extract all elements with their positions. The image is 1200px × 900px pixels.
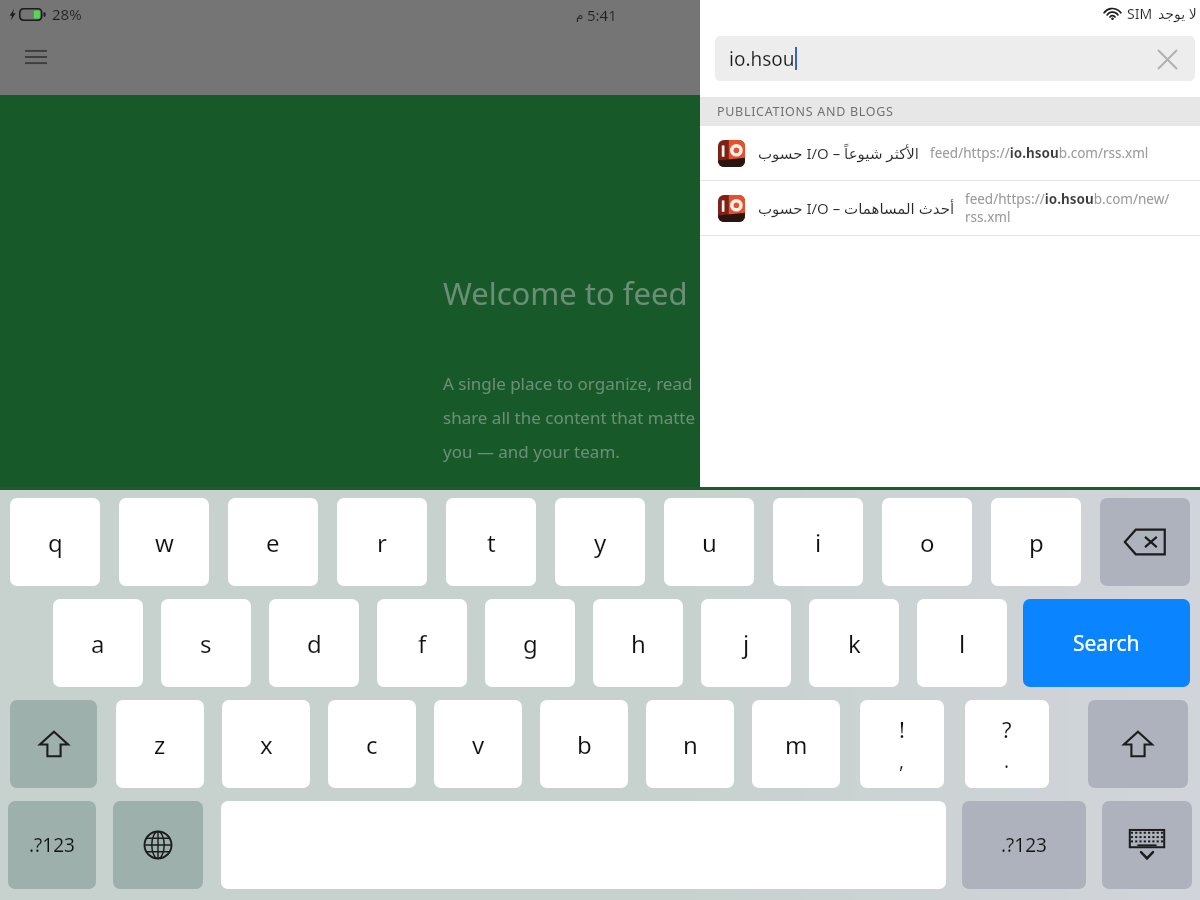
button[interactable]: y [555, 498, 645, 586]
staticText: j [743, 627, 750, 660]
staticText: share all the content that matte [443, 406, 696, 429]
button[interactable]: c [328, 700, 416, 788]
button[interactable]: حسوب I/O – الأكثر شيوعاً [700, 126, 1200, 180]
button[interactable]: i [773, 498, 863, 586]
staticText: A single place to organize, read [443, 372, 693, 395]
button[interactable]: t [446, 498, 536, 586]
button[interactable]: Hide keyboard [1102, 801, 1192, 889]
button[interactable]: Search [1023, 599, 1190, 687]
button[interactable]: p [991, 498, 1081, 586]
button[interactable]: v [434, 700, 522, 788]
button[interactable]: Backspace [1100, 498, 1190, 586]
button[interactable]: e [228, 498, 318, 586]
staticText: SIM [1127, 4, 1153, 23]
button[interactable]: .?123 [962, 801, 1086, 889]
staticText: e [266, 526, 280, 559]
button[interactable]: f [377, 599, 467, 687]
staticText: حسوب I/O – الأكثر شيوعاً [758, 143, 920, 163]
button[interactable]: Shift [1088, 700, 1188, 788]
button[interactable]: m [752, 700, 840, 788]
staticText: p [1029, 526, 1044, 559]
staticText: 28% [52, 4, 82, 24]
button[interactable]: r [337, 498, 427, 586]
staticText: z [154, 728, 166, 761]
button[interactable]: x [222, 700, 310, 788]
staticText: .?123 [29, 832, 75, 858]
button[interactable]: z [116, 700, 204, 788]
staticText: g [523, 627, 538, 660]
button[interactable]: a [53, 599, 143, 687]
staticText: a [91, 627, 105, 660]
staticText: ? [1002, 714, 1012, 744]
staticText: n [683, 728, 698, 761]
staticText: v [472, 728, 485, 761]
staticText: q [48, 526, 63, 559]
staticText: b [577, 728, 592, 761]
staticText: Search [1073, 629, 1140, 658]
button[interactable]: Clear search query [1152, 44, 1182, 74]
button[interactable]: u [664, 498, 754, 586]
staticText: لا يوجد [1158, 4, 1197, 23]
staticText: io.hsou [729, 46, 795, 72]
button[interactable]: ! [860, 700, 944, 788]
button[interactable]: .?123 [8, 801, 96, 889]
staticText: r [377, 526, 387, 559]
staticText: m [785, 728, 808, 761]
staticText: feed/https://io.hsoub.com/new/rss.xml [965, 190, 1200, 226]
button[interactable]: l [917, 599, 1007, 687]
button[interactable]: ? [965, 700, 1049, 788]
button[interactable]: s [161, 599, 251, 687]
staticText: , [899, 748, 905, 774]
staticText: l [959, 627, 966, 660]
staticText: o [920, 526, 935, 559]
button[interactable]: Shift [10, 700, 97, 788]
staticText: .?123 [1001, 832, 1047, 858]
button[interactable]: q [10, 498, 100, 586]
staticText: you — and your team. [443, 440, 620, 463]
button[interactable]: h [593, 599, 683, 687]
staticText: u [702, 526, 717, 559]
staticText: PUBLICATIONS AND BLOGS [717, 103, 894, 120]
staticText: d [307, 627, 322, 660]
staticText: s [200, 627, 212, 660]
staticText: حسوب I/O – أحدث المساهمات [758, 198, 955, 218]
staticText: y [594, 526, 607, 559]
staticText: t [487, 526, 496, 559]
staticText: w [155, 526, 174, 559]
button[interactable]: n [646, 700, 734, 788]
button[interactable]: o [882, 498, 972, 586]
button[interactable]: g [485, 599, 575, 687]
staticText: i [815, 526, 822, 559]
button[interactable]: Change keyboard language [113, 801, 203, 889]
staticText: h [631, 627, 646, 660]
button[interactable]: Open navigation menu [18, 39, 54, 75]
staticText: x [260, 728, 273, 761]
button[interactable]: w [119, 498, 209, 586]
button[interactable]: حسوب I/O – أحدث المساهمات [700, 181, 1200, 235]
button[interactable]: k [809, 599, 899, 687]
staticText: 5:41 [587, 5, 617, 25]
button[interactable]: d [269, 599, 359, 687]
staticText: f [418, 627, 427, 660]
button[interactable]: io.hsou [715, 36, 1195, 81]
staticText: Welcome to feed [443, 272, 688, 314]
staticText: م [576, 8, 584, 22]
staticText: . [1004, 748, 1010, 774]
staticText: feed/https://io.hsoub.com/rss.xml [930, 144, 1149, 162]
button[interactable]: j [701, 599, 791, 687]
staticText: ! [899, 714, 905, 744]
button[interactable]: b [540, 700, 628, 788]
staticText: c [366, 728, 378, 761]
staticText: k [848, 627, 861, 660]
